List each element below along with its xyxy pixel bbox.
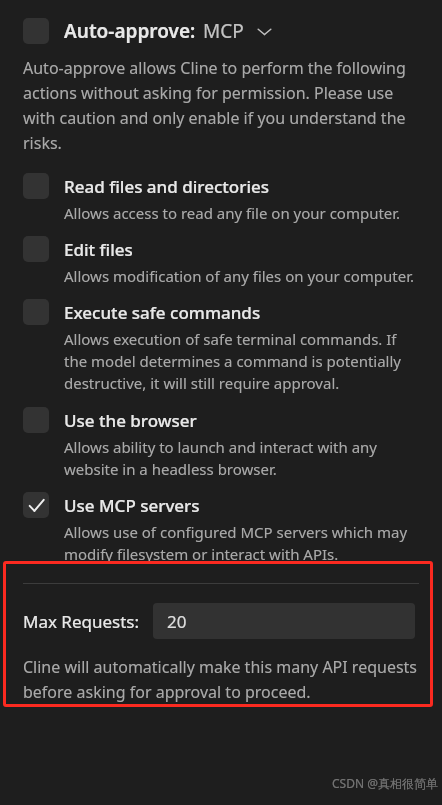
button[interactable]: Expand section [253,20,275,42]
staticText: Auto-approve: [64,18,196,44]
button[interactable]: Unchecked [0,173,442,199]
staticText: Allows execution of safe terminal comman… [64,329,416,394]
staticText: Allows use of configured MCP servers whi… [64,522,416,565]
button[interactable]: Unchecked [0,236,442,262]
staticText: CSDN @真相很简单 [332,775,438,791]
staticText: Read files and directories [64,175,269,198]
button[interactable]: Unchecked [23,407,49,433]
staticText: Allows access to read any file on your c… [64,203,401,223]
staticText: Allows ability to launch and interact wi… [64,437,416,480]
staticText: Use MCP servers [64,494,200,517]
staticText: Cline will automatically make this many … [23,656,426,702]
button[interactable]: Unchecked [0,18,442,44]
button[interactable]: Unchecked [0,299,442,325]
staticText: Auto-approve allows Cline to perform the… [23,57,426,153]
button[interactable]: Unchecked [23,236,49,262]
staticText: Max Requests: [23,610,140,633]
staticText: 20 [167,610,187,633]
button[interactable]: Unchecked [0,407,442,433]
button[interactable]: Checked [23,492,49,518]
button[interactable]: Unchecked [23,18,49,44]
staticText: Allows modification of any files on your… [64,266,414,286]
button[interactable]: Unchecked [23,173,49,199]
staticText: MCP [203,18,244,44]
button[interactable]: 20 [153,603,415,639]
staticText: Use the browser [64,409,197,432]
staticText: Edit files [64,238,133,261]
button[interactable]: Checked [0,492,442,518]
staticText: Execute safe commands [64,301,261,324]
button[interactable]: Unchecked [23,299,49,325]
